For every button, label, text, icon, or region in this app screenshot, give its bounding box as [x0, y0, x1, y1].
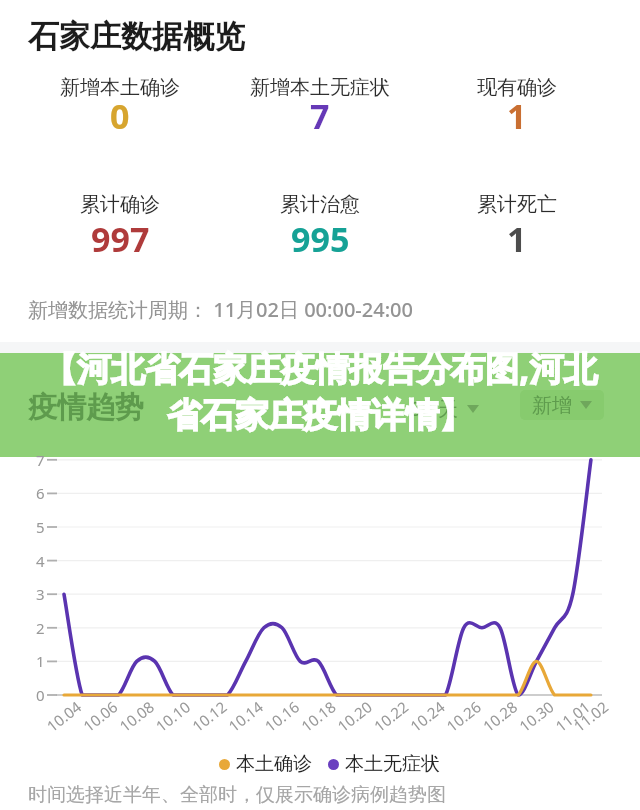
staticText: 新增本土无症状 [250, 75, 390, 100]
staticText: 997 [91, 216, 150, 262]
button[interactable]: 累计确诊 [10, 192, 230, 264]
staticText: 累计治愈 [280, 192, 360, 217]
button[interactable]: 累计治愈 [210, 192, 430, 264]
staticText: 新增数据统计周期： 11月02日 00:00-24:00 [28, 296, 413, 323]
staticText: 省石家庄疫情详情】 [167, 394, 473, 437]
staticText: 本土确诊 [236, 752, 312, 776]
staticText: 7 [310, 93, 330, 139]
staticText: 【河北省石家庄疫情报告分布图,河北 [43, 345, 598, 391]
staticText: 1 [507, 216, 527, 262]
staticText: 1 [507, 93, 527, 139]
staticText: 累计死亡 [477, 192, 557, 217]
staticText: 石家庄数据概览 [28, 17, 245, 56]
button[interactable]: 累计死亡 [407, 192, 627, 264]
staticText: 新增 [532, 393, 572, 418]
staticText: 0 [110, 93, 130, 139]
button[interactable]: 新增本土确诊 [10, 75, 230, 141]
button[interactable]: 现有确诊 [407, 75, 627, 141]
staticText: 新增本土确诊 [60, 75, 180, 100]
staticText: 时间选择近半年、全部时，仅展示确诊病例趋势图 [28, 783, 446, 807]
staticText: 现有确诊 [477, 75, 557, 100]
staticText: 本土无症状 [345, 752, 440, 776]
button[interactable]: 新增 [520, 390, 604, 420]
button[interactable]: 新增本土无症状 [210, 75, 430, 141]
staticText: 累计确诊 [80, 192, 160, 217]
staticText: 995 [291, 216, 350, 262]
button[interactable]: 30 天 [410, 395, 479, 422]
staticText: 疫情趋势 [28, 389, 144, 426]
staticText: 30 天 [410, 395, 459, 422]
